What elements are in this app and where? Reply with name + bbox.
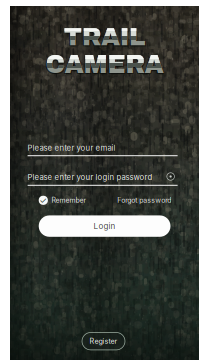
button[interactable]: Forgot password [117,195,171,205]
staticText: Remember [51,196,86,204]
button[interactable]: Login [39,215,170,237]
staticText: Register [89,337,117,345]
staticText: CAMERA [47,52,165,79]
staticText: CAMERA [45,51,163,78]
staticText: TRAIL [64,24,145,50]
staticText: CAMERA [45,52,163,79]
button[interactable]: Register [82,332,125,350]
staticText: TRAIL [65,25,146,52]
staticText: CAMERA [45,51,163,78]
staticText: CAMERA [45,51,163,78]
button[interactable]: ✓ [39,195,86,205]
staticText: ✓ [39,195,47,206]
staticText: TRAIL [63,25,144,51]
staticText: TRAIL [64,24,145,50]
staticText: Login [94,221,116,231]
button[interactable]: Show password [164,169,178,183]
staticText: TRAIL [64,24,145,50]
staticText: Please enter your login password [28,173,153,182]
staticText: TRAIL [64,24,145,50]
staticText: CAMERA [45,51,163,78]
staticText: Please enter your email [28,143,116,153]
staticText: Forgot password [117,196,171,204]
